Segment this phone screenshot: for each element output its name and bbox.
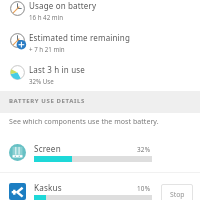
button[interactable]: Last 3 hours in use (0, 64, 200, 96)
staticText: Usage on battery (29, 0, 97, 11)
staticText: 32% Use (29, 77, 54, 85)
staticText: 32% (137, 145, 151, 154)
button[interactable]: Stop (161, 184, 193, 200)
staticText: See which components use the most batter… (9, 117, 159, 127)
staticText: Estimated time remaining (29, 32, 131, 43)
staticText: 16 h 42 min (29, 13, 64, 21)
button[interactable]: Kaskus (0, 179, 200, 200)
staticText: Kaskus (34, 182, 62, 193)
other: Estimated time remaining (10, 33, 25, 48)
staticText: Stop (170, 190, 185, 199)
button[interactable]: Estimated time remaining (0, 32, 200, 64)
other: Kaskus (9, 183, 26, 200)
other: Last 3 hours in use (10, 65, 25, 80)
staticText: Last 3 h in use (29, 64, 85, 75)
staticText: Screen (34, 143, 61, 154)
staticText: + 7 h 21 min (29, 45, 65, 53)
other: Usage on battery (10, 1, 25, 16)
other: Screen (9, 144, 26, 161)
button[interactable]: Usage on battery (0, 0, 200, 32)
staticText: 10% (137, 184, 151, 193)
staticText: BATTERY USE DETAILS (9, 97, 85, 105)
button[interactable]: Screen (0, 140, 200, 170)
